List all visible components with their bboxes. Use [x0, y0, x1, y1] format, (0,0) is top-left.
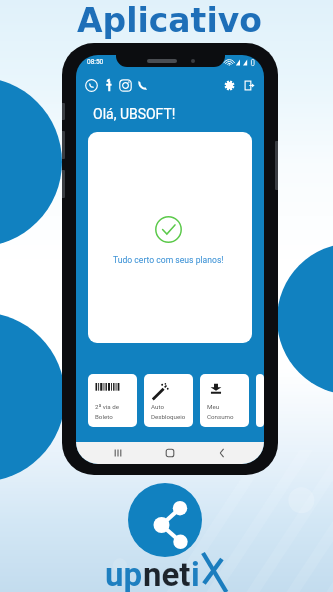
staticText: Olá, UBSOFT!	[93, 106, 176, 122]
button[interactable]: Auto Desbloqueio	[144, 374, 193, 427]
staticText: 2ª via de Boleto	[95, 403, 119, 420]
staticText: Meu Consumo	[207, 403, 234, 420]
staticText: Tudo certo com seus planos!	[113, 255, 224, 265]
button[interactable]: Logout	[244, 80, 255, 91]
staticText: Aplicativo	[77, 1, 262, 39]
button[interactable]	[256, 374, 264, 427]
button[interactable]: Back	[212, 443, 232, 463]
button[interactable]: Tudo certo com seus planos!	[88, 132, 252, 343]
button[interactable]: 2ª via de Boleto	[88, 374, 137, 427]
button[interactable]: Instagram	[119, 79, 132, 92]
button[interactable]: Home	[160, 443, 180, 463]
button[interactable]: Meu Consumo	[200, 374, 249, 427]
button[interactable]: Facebook	[102, 79, 115, 92]
staticText: net	[143, 555, 191, 592]
staticText: i	[191, 555, 200, 592]
button[interactable]: Recents	[108, 443, 128, 463]
staticText: Auto Desbloqueio	[151, 403, 186, 420]
button[interactable]: Settings	[224, 80, 235, 91]
staticText: up	[105, 555, 143, 592]
button[interactable]: upnetix logo	[128, 483, 202, 557]
staticText: 08:50	[87, 58, 104, 66]
button[interactable]: Phone	[136, 79, 149, 92]
button[interactable]: WhatsApp	[85, 79, 98, 92]
